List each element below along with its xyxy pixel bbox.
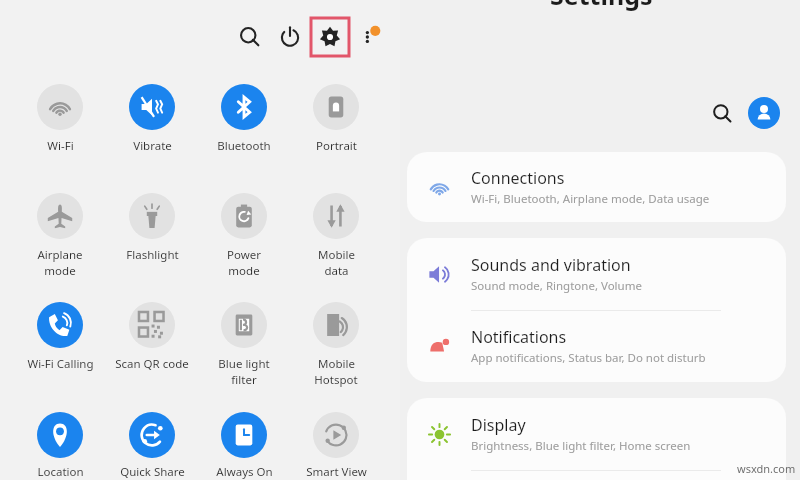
button[interactable]: Always On <box>198 412 290 480</box>
staticText: wsxdn.com <box>737 461 796 476</box>
button[interactable]: Notifications <box>407 310 786 382</box>
button[interactable]: Bluetooth <box>198 84 290 154</box>
button[interactable]: Airplane <box>14 193 106 279</box>
button[interactable]: Portrait <box>290 84 382 154</box>
button[interactable]: Display <box>407 398 786 470</box>
staticText: Hotspot <box>314 372 358 388</box>
button[interactable]: Location <box>14 412 106 480</box>
staticText: Airplane <box>37 247 83 263</box>
button[interactable]: Mobile <box>290 193 382 279</box>
staticText: Bluetooth <box>217 138 271 154</box>
staticText: Mobile <box>318 356 355 372</box>
staticText: Power <box>227 247 261 263</box>
staticText: Mobile <box>318 247 355 263</box>
staticText: Always On <box>216 464 273 480</box>
staticText: Scan QR code <box>115 356 189 372</box>
staticText: data <box>324 263 349 279</box>
staticText: Wi-Fi <box>47 138 74 154</box>
staticText: Notifications <box>471 326 567 348</box>
staticText: filter <box>231 372 257 388</box>
button[interactable]: Quick Share <box>106 412 198 480</box>
button[interactable]: Flashlight <box>106 193 198 263</box>
button[interactable]: Vibrate <box>106 84 198 154</box>
staticText: Wi-Fi Calling <box>27 356 94 372</box>
button[interactable]: Mobile <box>290 302 382 388</box>
staticText: Connections <box>471 167 565 189</box>
button[interactable]: Wi-Fi Calling <box>14 302 106 372</box>
staticText: mode <box>228 263 260 279</box>
button[interactable]: Search <box>232 19 268 55</box>
staticText: Portrait <box>316 138 357 154</box>
button[interactable]: Smart View <box>290 412 382 480</box>
staticText: Sounds and vibration <box>471 254 631 276</box>
button[interactable]: Sounds and vibration <box>407 238 786 310</box>
button[interactable]: Wi-Fi <box>14 84 106 154</box>
button[interactable]: Account <box>748 97 780 129</box>
staticText: Display <box>471 414 526 436</box>
staticText: Vibrate <box>133 138 172 154</box>
button[interactable]: Connections <box>407 152 786 222</box>
staticText: mode <box>44 263 76 279</box>
button[interactable]: More options <box>352 19 388 55</box>
staticText: Smart View <box>306 464 367 480</box>
button[interactable]: Power <box>272 19 308 55</box>
button[interactable]: Power <box>198 193 290 279</box>
staticText: Brightness, Blue light filter, Home scre… <box>471 438 691 454</box>
button[interactable]: Scan QR code <box>106 302 198 372</box>
staticText: Location <box>37 464 84 480</box>
button[interactable]: Search settings <box>704 95 740 131</box>
button[interactable]: Blue light <box>198 302 290 388</box>
staticText: Blue light <box>218 356 270 372</box>
staticText: Settings <box>550 0 653 12</box>
staticText: Flashlight <box>126 247 179 263</box>
staticText: Sound mode, Ringtone, Volume <box>471 278 642 294</box>
staticText: Quick Share <box>120 464 185 480</box>
staticText: Wi-Fi, Bluetooth, Airplane mode, Data us… <box>471 191 710 207</box>
button[interactable]: Settings <box>312 19 348 55</box>
staticText: App notifications, Status bar, Do not di… <box>471 350 706 366</box>
